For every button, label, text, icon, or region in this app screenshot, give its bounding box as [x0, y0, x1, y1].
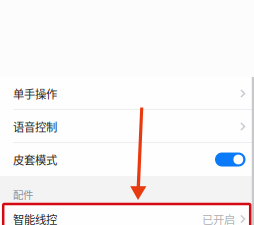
button[interactable]: 皮套模式	[0, 143, 254, 176]
button[interactable]: 语音控制	[0, 110, 254, 143]
staticText: 配件	[13, 187, 33, 202]
staticText: 单手操作	[13, 85, 57, 102]
staticText: 已开启	[202, 211, 235, 225]
staticText: 皮套模式	[13, 151, 57, 168]
button[interactable]: 单手操作	[0, 77, 254, 110]
staticText: 语音控制	[13, 118, 57, 135]
button[interactable]: 智能线控	[0, 203, 254, 225]
staticText: 智能线控	[13, 211, 57, 225]
